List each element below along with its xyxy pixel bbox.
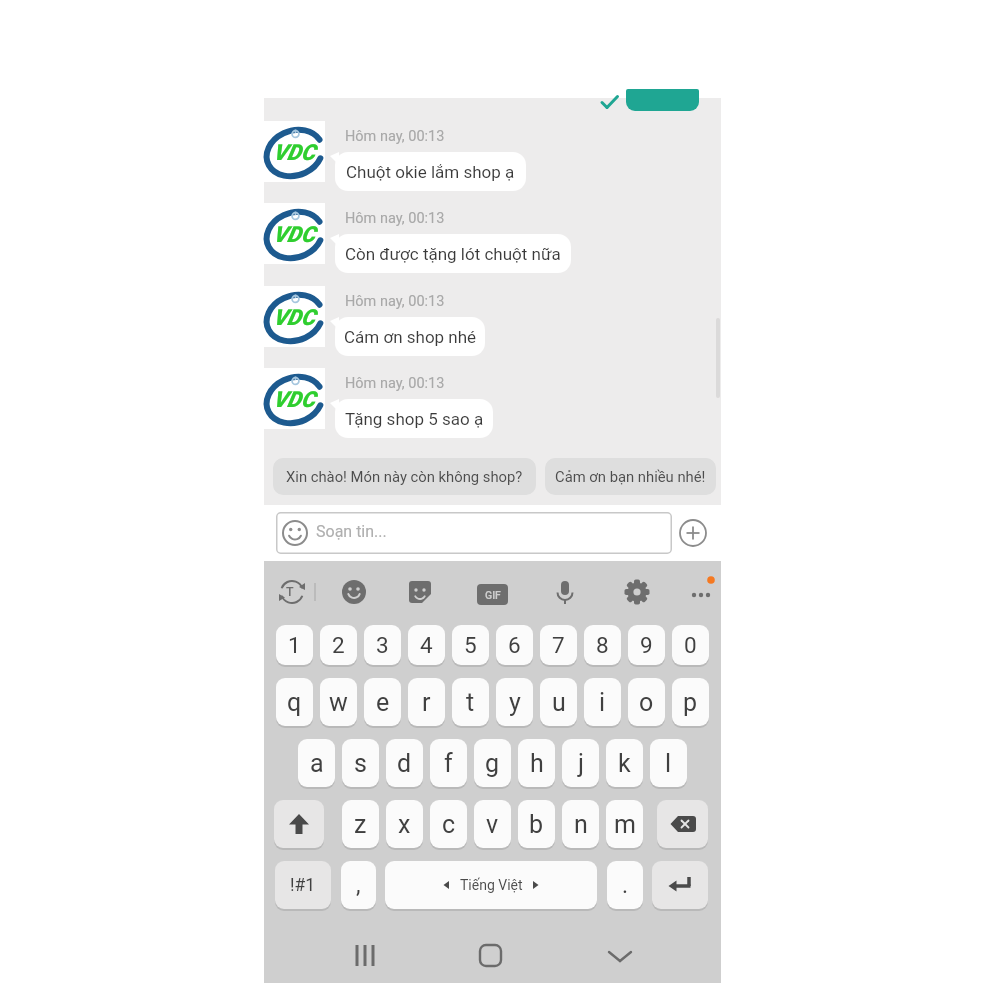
staticText: m [614, 810, 636, 839]
button[interactable] [274, 800, 324, 848]
button[interactable]: Còn được tặng lót chuột nữa [335, 234, 571, 273]
staticText: w [329, 688, 348, 717]
button[interactable]: Cảm ơn bạn nhiều nhé! [545, 458, 716, 495]
staticText: Cám ơn shop nhé [344, 327, 477, 347]
staticText: d [397, 749, 412, 778]
button[interactable]: m [606, 800, 643, 848]
staticText: p [683, 688, 698, 717]
staticText: a [310, 749, 324, 778]
staticText: 7 [552, 632, 565, 658]
button[interactable]: 9 [628, 625, 665, 665]
staticText: v [486, 810, 499, 839]
staticText: VDC [273, 387, 315, 413]
button[interactable]: r [408, 678, 445, 726]
button[interactable]: g [474, 739, 511, 787]
button[interactable]: o [628, 678, 665, 726]
button[interactable]: t [452, 678, 489, 726]
button[interactable]: n [562, 800, 599, 848]
staticText: 6 [508, 632, 521, 658]
staticText: 5 [464, 632, 477, 658]
staticText: VDC [273, 222, 315, 248]
button[interactable]: 1 [276, 625, 313, 665]
button[interactable]: i [584, 678, 621, 726]
staticText: c [442, 810, 456, 839]
button[interactable]: a [298, 739, 335, 787]
staticText: VDC [273, 305, 315, 331]
staticText: Cảm ơn bạn nhiều nhé! [555, 468, 706, 485]
staticText: q [287, 688, 302, 717]
staticText: k [618, 749, 631, 778]
button[interactable]: Tiếng Việt [385, 861, 597, 909]
button[interactable]: u [540, 678, 577, 726]
button[interactable]: 4 [408, 625, 445, 665]
button[interactable]: s [342, 739, 379, 787]
button[interactable]: e [364, 678, 401, 726]
staticText: t [466, 688, 475, 717]
button[interactable]: Xin chào! Món này còn không shop? [273, 458, 536, 495]
button[interactable] [330, 930, 402, 980]
staticText: . [622, 872, 629, 899]
staticText: T [286, 584, 294, 599]
staticText: Hôm nay, 00:13 [345, 210, 445, 227]
button[interactable]: q [276, 678, 313, 726]
button[interactable] [652, 861, 708, 909]
staticText: Hôm nay, 00:13 [345, 128, 445, 145]
staticText: x [398, 810, 411, 839]
staticText: i [599, 688, 606, 717]
button[interactable]: 7 [540, 625, 577, 665]
staticText: Xin chào! Món này còn không shop? [286, 468, 523, 485]
staticText: h [530, 749, 544, 778]
button[interactable]: c [430, 800, 467, 848]
button[interactable]: 2 [320, 625, 357, 665]
button[interactable]: d [386, 739, 423, 787]
button[interactable]: Tặng shop 5 sao ạ [335, 399, 493, 438]
button[interactable]: x [386, 800, 423, 848]
staticText: u [552, 688, 566, 717]
staticText: n [574, 810, 588, 839]
staticText: Hôm nay, 00:13 [345, 375, 445, 392]
staticText: Tặng shop 5 sao ạ [345, 409, 484, 429]
button[interactable]: !#1 [275, 861, 331, 909]
staticText: 0 [684, 632, 697, 658]
staticText: 1 [288, 632, 301, 658]
button[interactable]: 0 [672, 625, 709, 665]
button[interactable]: b [518, 800, 555, 848]
button[interactable]: z [342, 800, 379, 848]
staticText: y [509, 688, 521, 717]
staticText: r [422, 688, 431, 717]
button[interactable]: y [496, 678, 533, 726]
button[interactable] [584, 930, 656, 980]
staticText: GIF [485, 589, 501, 601]
button[interactable]: j [562, 739, 599, 787]
button[interactable]: Chuột okie lắm shop ạ [335, 152, 526, 191]
button[interactable]: p [672, 678, 709, 726]
button[interactable]: w [320, 678, 357, 726]
staticText: f [444, 749, 453, 778]
button[interactable]: l [650, 739, 687, 787]
button[interactable]: f [430, 739, 467, 787]
staticText: Tiếng Việt [460, 877, 523, 893]
button[interactable]: 5 [452, 625, 489, 665]
button[interactable] [276, 512, 672, 554]
staticText: Soạn tin... [316, 522, 387, 541]
button[interactable] [454, 930, 526, 980]
staticText: VDC [273, 140, 315, 166]
staticText: 8 [596, 632, 609, 658]
staticText: , [356, 872, 361, 899]
button[interactable]: v [474, 800, 511, 848]
button[interactable]: , [341, 861, 376, 909]
button[interactable]: 6 [496, 625, 533, 665]
button[interactable]: k [606, 739, 643, 787]
staticText: !#1 [290, 875, 316, 896]
button[interactable]: h [518, 739, 555, 787]
button[interactable]: . [607, 861, 643, 909]
button[interactable]: 3 [364, 625, 401, 665]
button[interactable]: 8 [584, 625, 621, 665]
staticText: z [354, 810, 367, 839]
button[interactable]: Cám ơn shop nhé [335, 317, 485, 356]
staticText: 3 [376, 632, 389, 658]
button[interactable] [657, 800, 708, 848]
staticText: 9 [640, 632, 653, 658]
staticText: Hôm nay, 00:13 [345, 293, 445, 310]
button[interactable] [626, 89, 699, 111]
